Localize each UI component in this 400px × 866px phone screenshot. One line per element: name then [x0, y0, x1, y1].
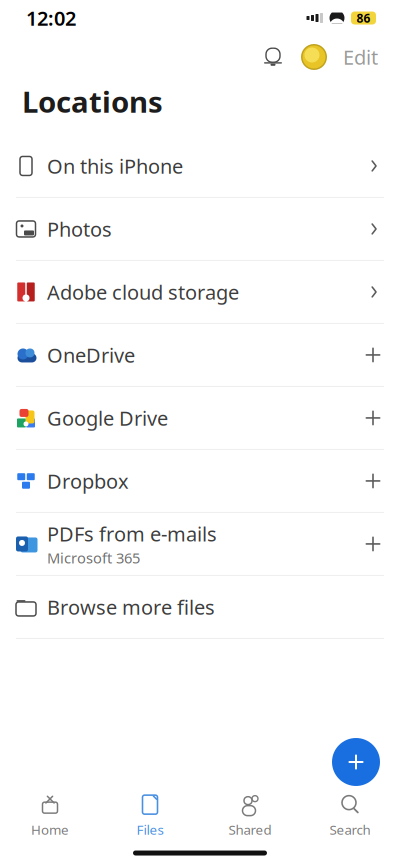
button[interactable]: OneDrive — [0, 324, 400, 387]
staticText: Locations — [22, 82, 163, 121]
staticText: Microsoft 365 — [47, 548, 140, 567]
button[interactable]: Google Drive — [0, 387, 400, 450]
staticText: Dropbox — [47, 468, 129, 494]
button[interactable]: Browse more files — [0, 576, 400, 639]
staticText: 12:02 — [26, 5, 76, 31]
button[interactable]: PDFs from e-mails — [0, 513, 400, 576]
button[interactable]: On this iPhone — [0, 135, 400, 198]
staticText: Home — [31, 821, 69, 838]
staticText: Browse more files — [47, 594, 215, 620]
staticText: Edit — [343, 44, 378, 70]
button[interactable]: Photos — [0, 198, 400, 261]
button[interactable]: Adobe cloud storage — [0, 261, 400, 324]
button[interactable]: Edit — [335, 37, 386, 77]
button[interactable]: Search — [300, 792, 400, 840]
staticText: 86 — [356, 10, 370, 26]
staticText: Photos — [47, 216, 112, 242]
staticText: On this iPhone — [47, 153, 183, 179]
staticText: Google Drive — [47, 405, 168, 431]
button[interactable]: Create — [328, 734, 384, 790]
staticText: Search — [329, 821, 370, 838]
button[interactable]: Shared — [200, 792, 300, 840]
staticText: Adobe cloud storage — [47, 279, 239, 305]
staticText: Files — [136, 821, 163, 838]
staticText: Shared — [228, 821, 271, 838]
staticText: PDFs from e-mails — [47, 520, 217, 547]
button[interactable]: Files — [100, 792, 200, 840]
staticText: OneDrive — [47, 342, 135, 368]
button[interactable]: Dropbox — [0, 450, 400, 513]
button[interactable]: Account — [293, 36, 335, 78]
button[interactable]: Home — [0, 792, 100, 840]
button[interactable]: Notifications — [253, 37, 293, 77]
